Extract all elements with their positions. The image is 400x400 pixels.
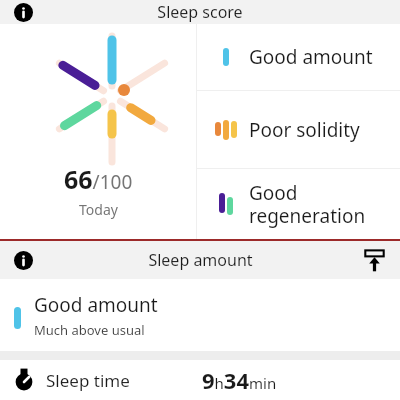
staticText: Good regeneration — [249, 180, 366, 229]
staticText: Good amount — [249, 44, 373, 70]
staticText: Sleep score — [157, 1, 243, 23]
staticText: Poor solidity — [249, 117, 360, 143]
button[interactable]: Export — [363, 249, 386, 272]
staticText: Much above usual — [34, 321, 145, 339]
staticText: 66/100 — [64, 162, 133, 196]
staticText: Sleep amount — [148, 249, 253, 271]
other: Sleep time — [14, 370, 34, 390]
button[interactable]: Good amount — [197, 24, 400, 90]
staticText: 9h34min — [202, 365, 277, 395]
button[interactable]: Good regeneration — [197, 169, 400, 239]
staticText: Sleep time — [46, 369, 130, 392]
button[interactable]: Info — [14, 251, 33, 270]
button[interactable]: Sleep time — [0, 360, 400, 400]
button[interactable]: Poor solidity — [197, 91, 400, 168]
button[interactable]: Good amount — [0, 279, 400, 351]
button[interactable]: Info — [14, 3, 33, 22]
staticText: Today — [79, 200, 118, 219]
staticText: Good amount — [34, 292, 158, 318]
